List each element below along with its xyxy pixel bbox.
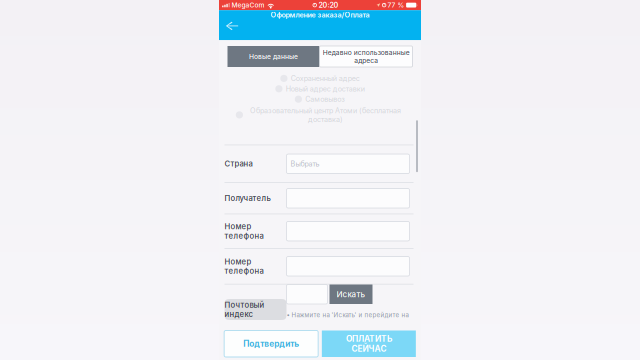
staticText: Подтвердить: [243, 339, 299, 349]
staticText: Образовательный центр Атоми (бесплатная …: [250, 106, 401, 124]
staticText: 77 %: [388, 1, 405, 9]
button[interactable]: Недавно использованные адреса: [319, 46, 412, 67]
button[interactable]: Back: [219, 10, 243, 35]
staticText: Самовывоз: [305, 95, 345, 103]
staticText: Сохраненный адрес: [291, 74, 360, 83]
staticText: 20:20: [318, 1, 338, 9]
button[interactable]: Искать: [329, 284, 372, 304]
staticText: Номер телефона: [224, 257, 263, 276]
staticText: Страна: [224, 159, 252, 168]
staticText: • Нажмите на 'Искать' и перейдите на: [286, 311, 408, 319]
staticText: Оформление заказа/Оплата: [270, 10, 369, 19]
staticText: Искать: [336, 289, 365, 299]
button[interactable]: Подтвердить: [224, 330, 318, 357]
staticText: Номер телефона: [224, 222, 263, 240]
staticText: Выбрать: [290, 159, 319, 168]
button[interactable]: Новые данные: [227, 46, 319, 67]
button[interactable]: ОПЛАТИТЬ СЕЙЧАС: [322, 330, 416, 357]
staticText: MegaCom: [231, 1, 264, 9]
staticText: Новый адрес доставки: [286, 84, 365, 93]
staticText: Почтовый индекс: [224, 300, 264, 319]
staticText: ОПЛАТИТЬ СЕЙЧАС: [346, 334, 392, 354]
staticText: Недавно использованные адреса: [322, 48, 409, 64]
staticText: Новые данные: [249, 52, 298, 61]
staticText: Получатель: [224, 194, 270, 203]
